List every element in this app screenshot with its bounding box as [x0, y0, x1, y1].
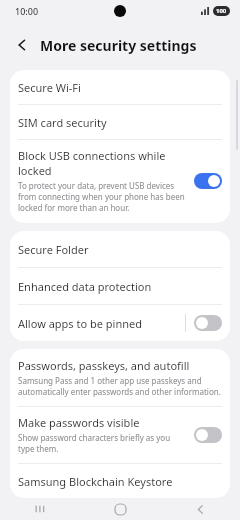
button[interactable]: Allow apps to be pinned	[10, 305, 230, 341]
staticText: Allow apps to be pinned	[18, 316, 142, 331]
button[interactable]: Block USB connections while locked	[10, 140, 230, 223]
staticText: Make passwords visible	[18, 415, 140, 430]
button[interactable]: Toggle off	[194, 315, 222, 331]
button[interactable]: SIM card security	[10, 105, 230, 139]
button[interactable]: Home	[80, 498, 160, 520]
staticText: More security settings	[40, 36, 197, 55]
staticText: Passwords, passkeys, and autofill	[18, 358, 190, 373]
button[interactable]: Back	[8, 31, 36, 59]
button[interactable]: Secure Wi-Fi	[10, 70, 230, 104]
staticText: Show password characters briefly as you …	[18, 432, 188, 454]
staticText: Secure Wi-Fi	[18, 80, 81, 95]
button[interactable]: Enhanced data protection	[10, 268, 230, 304]
staticText: Block USB connections while locked	[18, 148, 188, 178]
staticText: 100	[216, 7, 227, 15]
staticText: 10:00	[15, 5, 39, 17]
button[interactable]: Make passwords visible	[10, 407, 230, 463]
staticText: Samsung Pass and 1 other app use passkey…	[18, 375, 222, 397]
staticText: Enhanced data protection	[18, 279, 152, 294]
button[interactable]: Toggle off	[194, 427, 222, 443]
staticText: To protect your data, prevent USB device…	[18, 180, 188, 213]
staticText: Samsung Blockchain Keystore	[18, 474, 173, 489]
staticText: Secure Folder	[18, 242, 89, 257]
staticText: SIM card security	[18, 115, 107, 130]
button[interactable]: Secure Folder	[10, 231, 230, 267]
button[interactable]: Recent apps	[0, 498, 80, 520]
button[interactable]: Passwords, passkeys, and autofill	[10, 349, 230, 406]
button[interactable]: Samsung Blockchain Keystore	[10, 464, 230, 498]
button[interactable]: Toggle on	[194, 173, 222, 189]
button[interactable]: Back	[160, 498, 240, 520]
